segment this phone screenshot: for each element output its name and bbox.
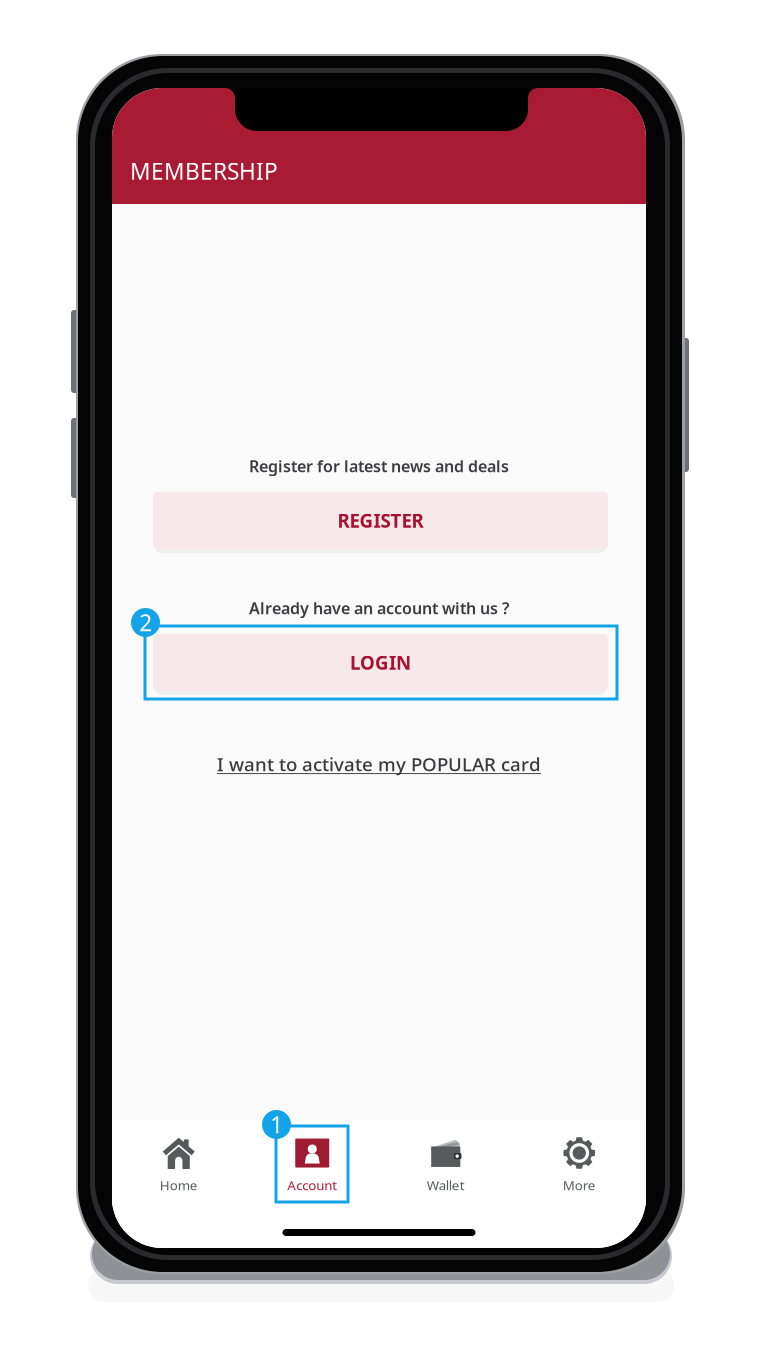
staticText: MEMBERSHIP [130,156,278,186]
staticText: More [563,1176,596,1194]
button[interactable]: REGISTER [153,492,608,549]
staticText: LOGIN [350,650,411,675]
staticText: 1 [270,1109,283,1139]
staticText: Already have an account with us ? [249,597,509,619]
staticText: I want to activate my POPULAR card [217,752,541,776]
staticText: Account [287,1176,337,1194]
staticText: Wallet [427,1176,465,1194]
staticText: Home [160,1176,198,1194]
staticText: 2 [139,607,152,637]
button[interactable]: Wallet [379,1120,512,1208]
staticText: Register for latest news and deals [249,455,509,477]
button[interactable]: Account [245,1120,379,1208]
button[interactable]: LOGIN [153,634,608,691]
button[interactable]: More [512,1120,646,1208]
button[interactable]: I want to activate my POPULAR card [112,751,646,777]
button[interactable]: Home [112,1120,245,1208]
staticText: REGISTER [337,508,423,533]
